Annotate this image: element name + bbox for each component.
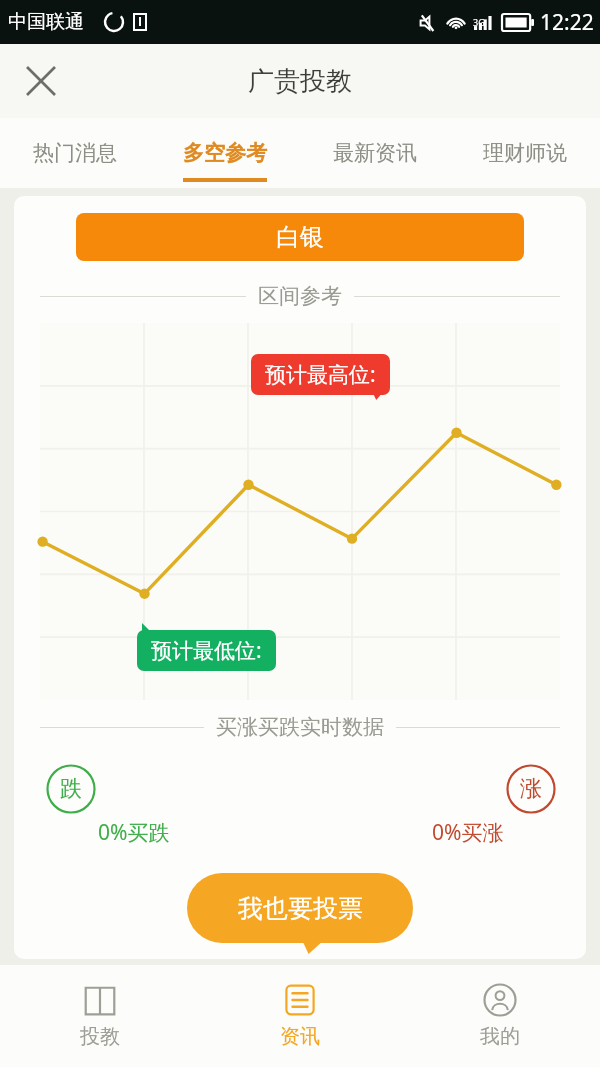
- staticText: 白银: [276, 222, 324, 252]
- staticText: 理财师说: [483, 140, 567, 166]
- staticText: 预计最高位:: [265, 360, 376, 389]
- staticText: 区间参考: [258, 283, 342, 309]
- staticText: 中国联通: [8, 10, 84, 34]
- button[interactable]: 涨: [432, 764, 556, 847]
- button[interactable]: 投教: [0, 965, 200, 1067]
- staticText: 0%买跌: [98, 818, 170, 847]
- staticText: 买涨买跌实时数据: [216, 714, 384, 740]
- staticText: 0%买涨: [432, 818, 504, 847]
- button[interactable]: Close: [16, 56, 66, 106]
- button[interactable]: 理财师说: [450, 118, 600, 188]
- button[interactable]: 热门消息: [0, 118, 150, 188]
- staticText: 投教: [80, 1024, 120, 1049]
- button[interactable]: 最新资讯: [300, 118, 450, 188]
- button[interactable]: 我的: [400, 965, 600, 1067]
- staticText: 热门消息: [33, 140, 117, 166]
- staticText: 我的: [480, 1024, 520, 1049]
- button[interactable]: 资讯: [200, 965, 400, 1067]
- staticText: 跌: [60, 775, 82, 803]
- button[interactable]: 白银: [76, 213, 524, 261]
- staticText: 资讯: [280, 1024, 320, 1049]
- staticText: 多空参考: [183, 140, 267, 166]
- staticText: 12:22: [540, 8, 594, 37]
- staticText: 广贵投教: [248, 65, 352, 98]
- staticText: 我也要投票: [238, 893, 363, 924]
- button[interactable]: 跌: [46, 764, 170, 847]
- staticText: 3G: [473, 16, 485, 28]
- staticText: 预计最低位:: [151, 636, 262, 665]
- button[interactable]: 多空参考: [150, 118, 300, 188]
- staticText: 最新资讯: [333, 140, 417, 166]
- button[interactable]: 我也要投票: [187, 873, 413, 943]
- staticText: 涨: [520, 775, 542, 803]
